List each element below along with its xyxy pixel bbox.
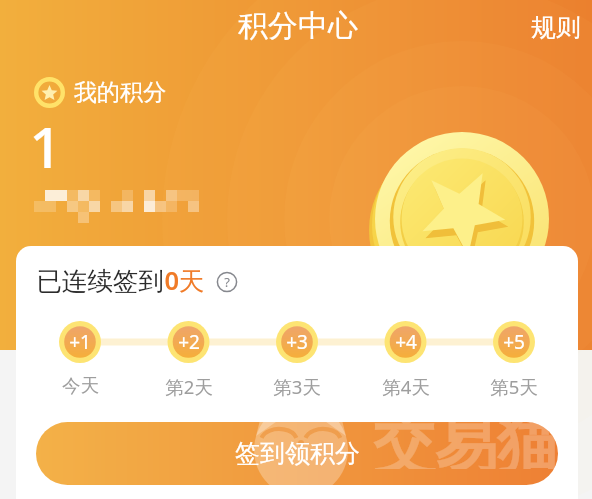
- button[interactable]: +5: [493, 321, 535, 363]
- button[interactable]: 签到规则说明: [216, 271, 238, 293]
- staticText: 0天: [164, 263, 205, 298]
- staticText: +5: [503, 329, 525, 355]
- staticText: 第4天: [382, 374, 430, 399]
- button[interactable]: +2: [168, 321, 210, 363]
- staticText: +1: [69, 329, 91, 355]
- staticText: 规则: [531, 12, 581, 43]
- button[interactable]: +4: [385, 321, 427, 363]
- staticText: 积分中心: [238, 7, 358, 45]
- staticText: +3: [286, 329, 308, 355]
- staticText: 第3天: [273, 374, 321, 399]
- staticText: 第5天: [490, 374, 538, 399]
- staticText: +4: [395, 329, 417, 355]
- staticText: +2: [178, 329, 200, 355]
- staticText: 1: [29, 107, 62, 185]
- staticText: 我的积分: [74, 78, 166, 107]
- button[interactable]: 规则: [525, 11, 587, 43]
- staticText: 交易猫: [373, 422, 558, 469]
- staticText: 已连续签到: [36, 265, 164, 297]
- staticText: 签到领积分: [235, 438, 360, 469]
- button[interactable]: +3: [276, 321, 318, 363]
- staticText: 第2天: [165, 374, 213, 399]
- staticText: 今天: [62, 374, 99, 397]
- button[interactable]: [36, 422, 558, 485]
- staticText: ?: [224, 273, 230, 291]
- button[interactable]: +1: [59, 321, 101, 363]
